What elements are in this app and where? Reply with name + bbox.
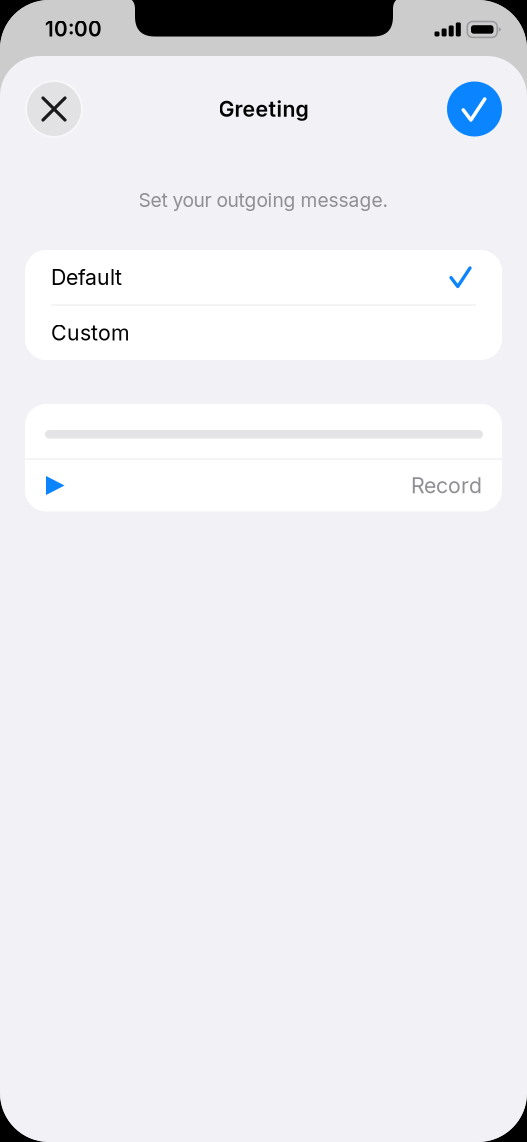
staticText: Greeting xyxy=(218,96,308,122)
button[interactable]: Close xyxy=(25,80,83,138)
button[interactable]: Default xyxy=(25,250,502,304)
button[interactable]: Custom xyxy=(25,305,502,360)
button[interactable]: Done xyxy=(447,81,502,136)
staticText: 10:00 xyxy=(45,16,102,41)
staticText: Custom xyxy=(51,320,130,346)
staticText: Set your outgoing message. xyxy=(138,188,388,212)
staticText: Default xyxy=(51,264,122,290)
button[interactable]: Record xyxy=(25,459,502,511)
staticText: Record xyxy=(411,473,482,498)
